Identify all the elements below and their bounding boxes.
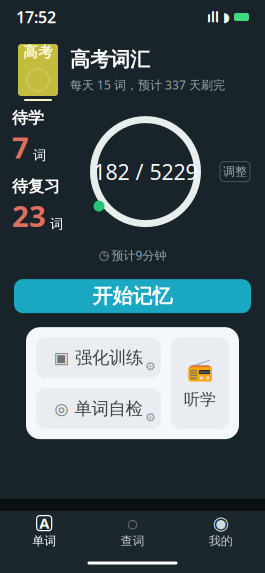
staticText: 每天 15 词，预计 337 天刷完 [70,77,225,93]
staticText: ◌ [127,511,138,535]
staticText: 调整 [223,164,247,179]
button[interactable]: ◎ [36,388,161,429]
staticText: 开始记忆 [92,284,172,308]
staticText: 我的 [209,534,233,548]
button[interactable]: ▣ [36,337,161,378]
staticText: ▣ [54,349,69,367]
button[interactable]: 📻 [171,337,229,429]
staticText: 23 [12,196,46,235]
staticText: ⚙ [145,359,156,373]
staticText: 待学 [12,108,44,128]
staticText: 听学 [184,389,216,409]
staticText: ◗ [223,9,230,24]
staticText: ıll [207,8,219,26]
button[interactable]: ◉ [177,511,265,553]
staticText: 词 [50,216,63,232]
staticText: 单词自检 [74,398,142,419]
staticText: ◷ [98,248,108,262]
staticText: 📻 [186,357,213,381]
staticText: 词 [33,147,46,164]
staticText: ⚙ [145,410,156,424]
staticText: 单词 [32,534,56,548]
staticText: ◎ [54,400,68,418]
button[interactable]: 开始记忆 [14,279,251,313]
staticText: A [39,513,49,533]
staticText: 高考 [23,43,53,61]
button[interactable]: A [0,511,88,553]
staticText: 高考词汇 [70,47,150,72]
staticText: 预计9分钟 [111,247,166,263]
staticText: 17:52 [16,6,56,28]
staticText: 强化训练 [75,347,143,368]
staticText: 7 [12,128,29,167]
staticText: ◉ [213,512,229,534]
button[interactable]: ◌ [88,511,177,553]
staticText: 待复习 [12,177,60,196]
staticText: 182 / 5229 [93,157,197,186]
staticText: 查词 [120,534,144,548]
button[interactable]: 调整 [220,162,250,182]
